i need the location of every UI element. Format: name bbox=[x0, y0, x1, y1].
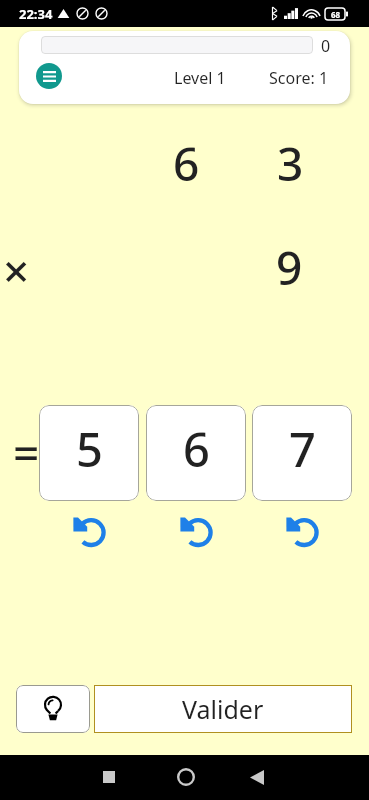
staticText: 68 bbox=[331, 9, 341, 20]
button[interactable]: Undo bbox=[280, 510, 324, 554]
staticText: 3 bbox=[277, 132, 304, 195]
button[interactable]: 6 bbox=[146, 405, 246, 501]
staticText: 6 bbox=[173, 132, 200, 195]
staticText: × bbox=[3, 239, 30, 302]
button[interactable]: Menu bbox=[36, 63, 62, 89]
button[interactable]: Back bbox=[237, 757, 277, 797]
button[interactable]: Valider bbox=[94, 685, 352, 733]
staticText: 6 bbox=[183, 417, 210, 481]
staticText: Level 1 bbox=[174, 67, 226, 89]
staticText: 5 bbox=[76, 417, 103, 481]
staticText: 0 bbox=[321, 35, 331, 57]
button[interactable]: Home bbox=[166, 757, 206, 797]
button[interactable]: Recent apps bbox=[89, 757, 129, 797]
button[interactable]: 7 bbox=[252, 405, 352, 501]
staticText: Valider bbox=[182, 692, 264, 726]
staticText: 7 bbox=[289, 417, 316, 481]
staticText: 9 bbox=[276, 236, 303, 299]
button[interactable]: 5 bbox=[39, 405, 139, 501]
staticText: = bbox=[13, 421, 40, 484]
button[interactable]: Undo bbox=[174, 510, 218, 554]
staticText: 22:34 bbox=[19, 5, 53, 23]
button[interactable]: Hint bbox=[16, 685, 90, 733]
button[interactable]: Undo bbox=[67, 510, 111, 554]
staticText: Score: 1 bbox=[269, 67, 329, 89]
